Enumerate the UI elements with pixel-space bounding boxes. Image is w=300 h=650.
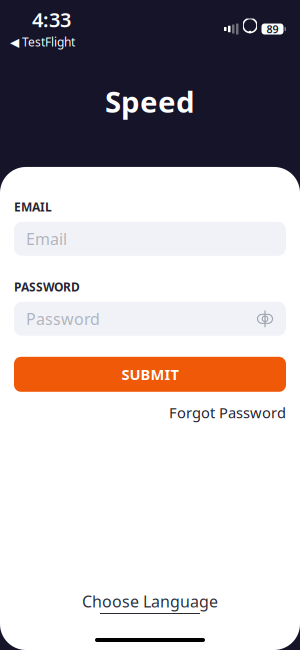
staticText: Password	[26, 308, 100, 329]
button[interactable]: Choose Language	[82, 591, 218, 614]
staticText: EMAIL	[14, 199, 52, 215]
staticText: PASSWORD	[14, 279, 80, 295]
button[interactable]: Forgot Password	[169, 403, 286, 422]
button[interactable]: SUBMIT	[14, 357, 286, 392]
staticText: 89	[266, 22, 278, 36]
staticText: Choose Language	[82, 591, 218, 612]
staticText: Forgot Password	[169, 403, 286, 422]
button[interactable]: Show password	[252, 306, 278, 332]
staticText: Email	[26, 228, 67, 249]
staticText: 4:33	[32, 6, 71, 33]
staticText: Speed	[105, 82, 195, 121]
staticText: ◀ TestFlight	[10, 34, 75, 50]
staticText: SUBMIT	[121, 365, 178, 384]
